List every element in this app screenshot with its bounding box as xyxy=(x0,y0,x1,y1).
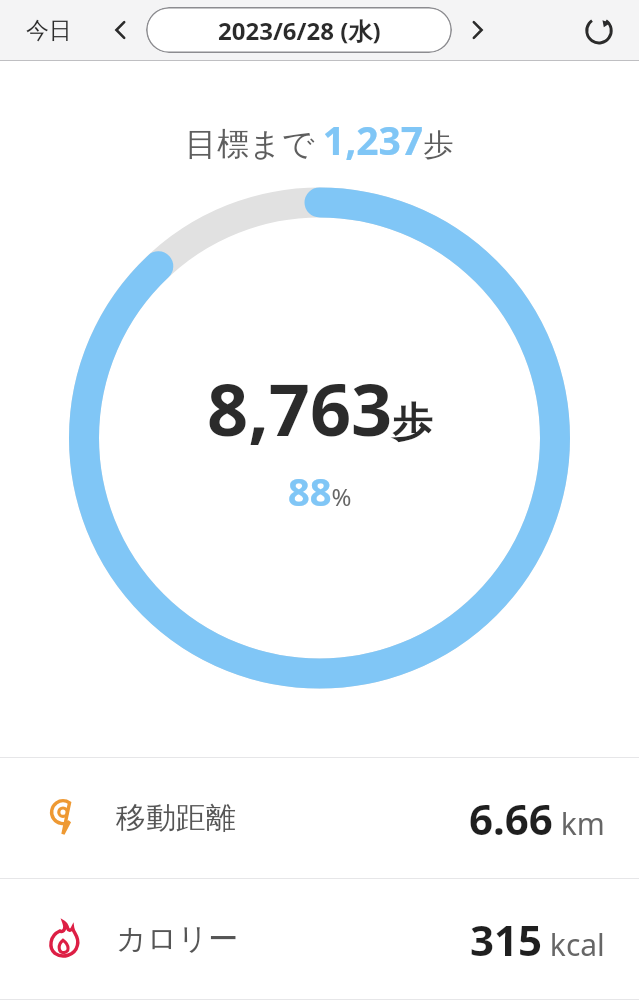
staticText: 今日 xyxy=(26,16,72,45)
button[interactable]: カロリー xyxy=(0,879,639,999)
staticText: 6.66 km xyxy=(469,790,605,847)
staticText: 8,763歩 xyxy=(207,359,433,457)
staticText: 2023/6/28 (水) xyxy=(218,14,381,47)
button[interactable]: 移動距離 xyxy=(0,758,639,878)
staticText: 88% xyxy=(288,465,352,517)
staticText: カロリー xyxy=(116,920,239,958)
button[interactable]: Next day xyxy=(456,8,500,52)
button[interactable]: Refresh xyxy=(573,4,625,56)
staticText: 315 kcal xyxy=(470,911,605,968)
staticText: 目標まで 1,237歩 xyxy=(185,113,454,166)
button[interactable]: 2023/6/28 (水) xyxy=(146,7,452,53)
staticText: 移動距離 xyxy=(116,799,236,837)
button[interactable]: Previous day xyxy=(98,8,142,52)
button[interactable]: 今日 xyxy=(18,10,80,51)
